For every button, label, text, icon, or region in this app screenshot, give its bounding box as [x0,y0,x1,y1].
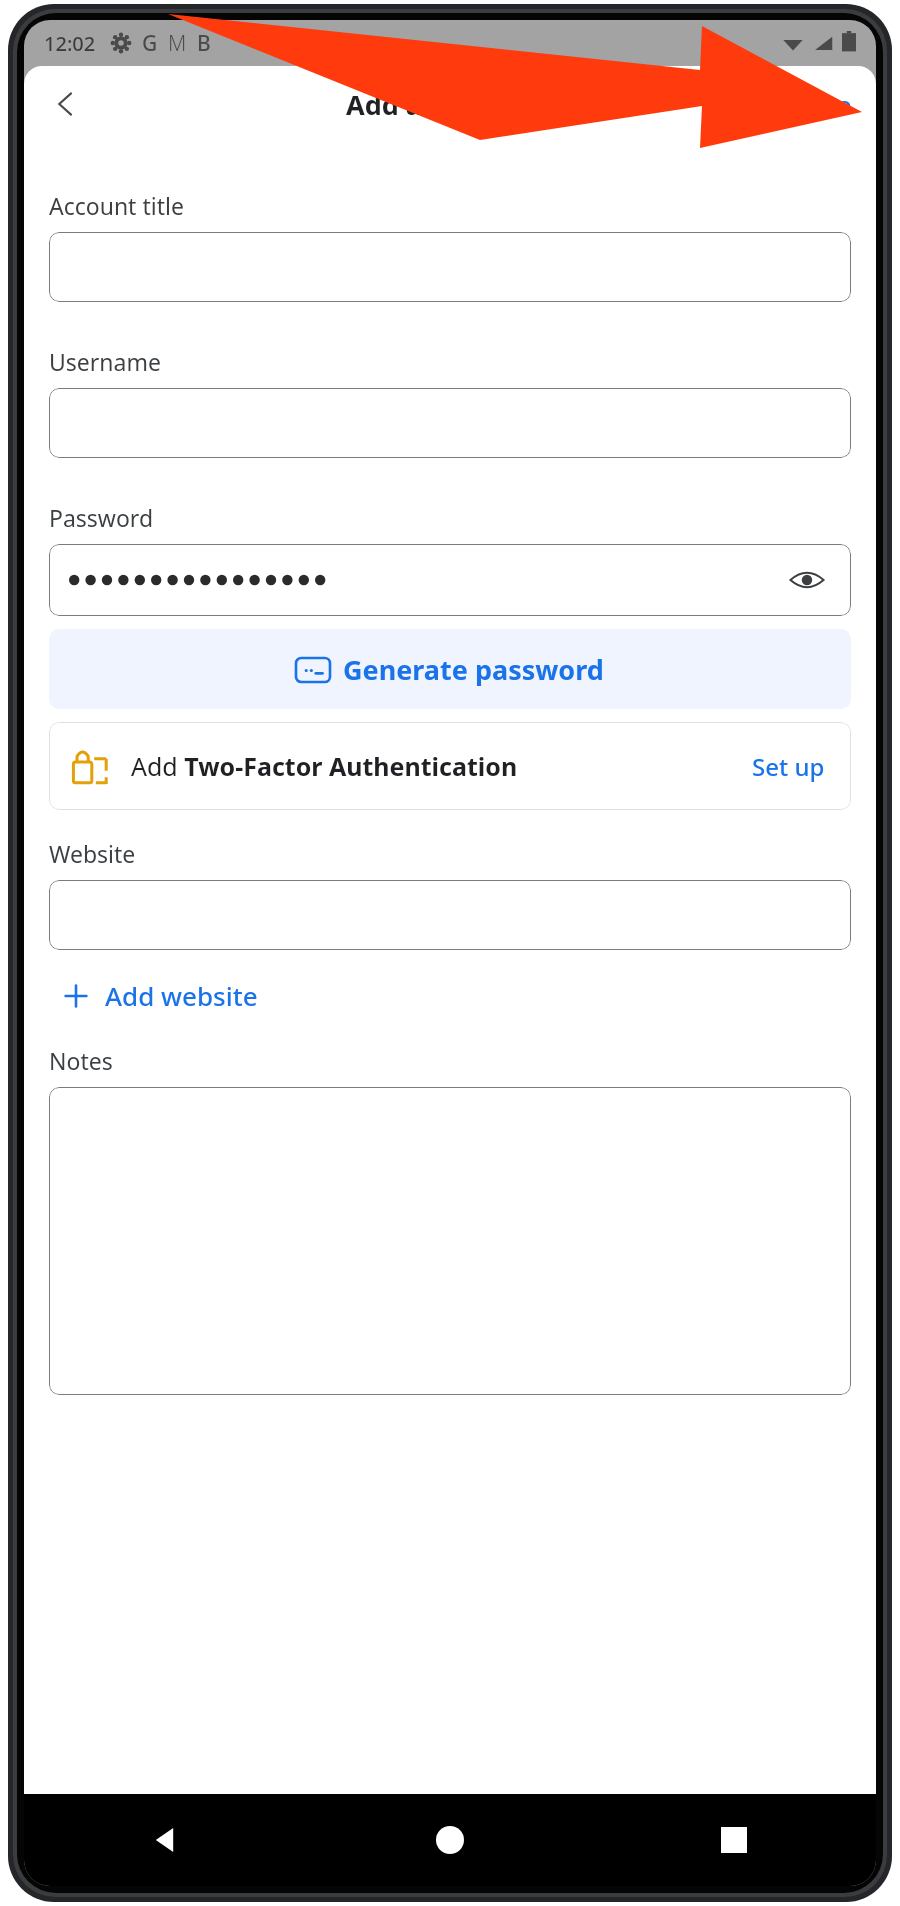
staticText: Add Two-Factor Authentication [131,749,518,783]
button[interactable]: Home [308,1794,592,1886]
staticText: M [168,29,187,58]
staticText: Set up [752,750,825,783]
button[interactable]: Set up [748,742,829,791]
button[interactable]: Add website [49,972,272,1019]
button[interactable]: Generate password [49,629,851,709]
staticText: B [197,29,211,58]
button[interactable] [49,1087,851,1395]
staticText: Generate password [343,651,604,688]
button[interactable]: Show password [49,544,851,616]
button[interactable] [49,880,851,950]
staticText: Add an account [346,86,555,123]
staticText: 12:02 [44,30,96,57]
button[interactable] [49,388,851,458]
staticText: Notes [49,1045,113,1076]
staticText: Add website [105,978,258,1013]
button[interactable]: Show password [783,556,831,604]
staticText: Password [49,502,154,533]
staticText: Save [794,87,852,122]
staticText: Account title [49,190,184,221]
staticText: Username [49,346,161,377]
button[interactable]: Back [24,1794,308,1886]
button[interactable]: Save [780,77,866,132]
staticText: Website [49,838,136,869]
button[interactable]: Recents [592,1794,876,1886]
staticText: G [142,29,158,58]
button[interactable]: Back [38,76,94,132]
button[interactable] [49,232,851,302]
button[interactable]: Add Two-Factor Authentication [49,722,851,810]
